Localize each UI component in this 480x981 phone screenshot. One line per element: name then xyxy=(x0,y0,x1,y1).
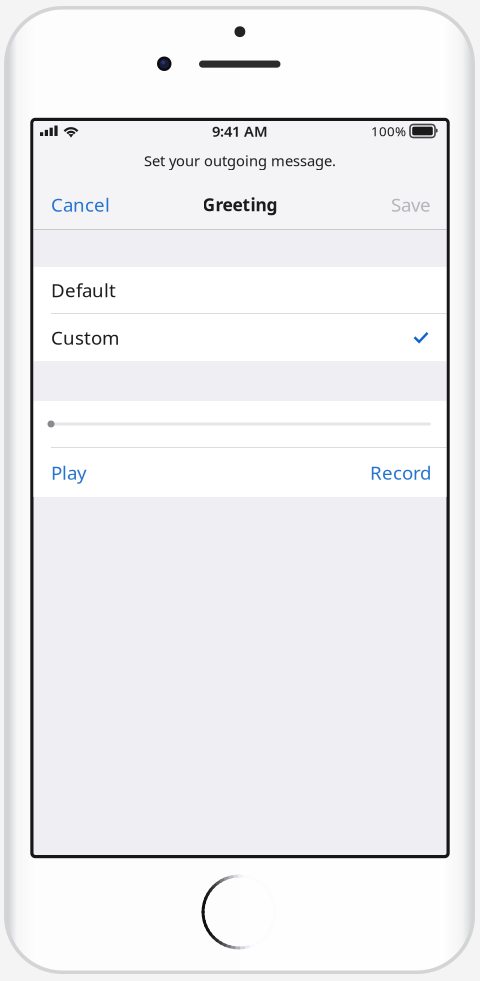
button[interactable]: Record xyxy=(356,448,446,497)
staticText: Greeting xyxy=(202,193,277,216)
staticText: Cancel xyxy=(51,192,110,217)
button[interactable]: Cancel xyxy=(33,180,122,229)
staticText: Custom xyxy=(51,325,119,350)
staticText: Save xyxy=(391,192,431,217)
button[interactable]: Play xyxy=(33,448,101,497)
staticText: Record xyxy=(370,460,431,485)
staticText: Play xyxy=(51,460,87,485)
staticText: 100% xyxy=(371,122,406,140)
button[interactable]: Save xyxy=(379,180,446,229)
staticText: 9:41 AM xyxy=(212,121,268,141)
button[interactable]: Default xyxy=(33,267,446,313)
staticText: Default xyxy=(51,278,116,302)
staticText: Set your outgoing message. xyxy=(144,151,336,170)
button[interactable]: Custom xyxy=(33,314,446,361)
